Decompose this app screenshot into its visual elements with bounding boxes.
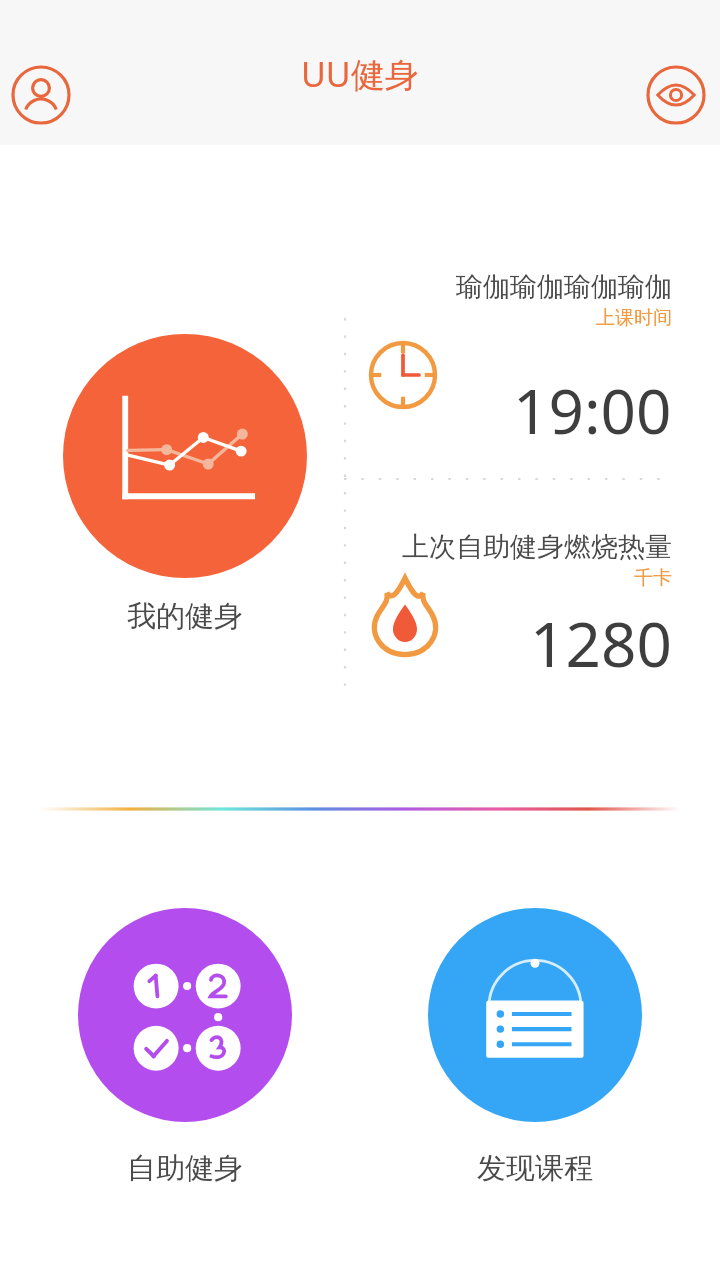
button[interactable]: 瑜伽瑜伽瑜伽瑜伽 (346, 270, 672, 470)
button[interactable]: Preview (643, 62, 709, 128)
staticText: 千卡 (634, 566, 672, 590)
staticText: 上课时间 (596, 306, 672, 330)
button[interactable]: 发现课程 (428, 908, 642, 1187)
staticText: 我的健身 (127, 598, 243, 635)
staticText: 发现课程 (477, 1150, 593, 1187)
button[interactable]: 我的健身 (63, 334, 307, 635)
staticText: 上次自助健身燃烧热量 (402, 530, 672, 564)
staticText: 瑜伽瑜伽瑜伽瑜伽 (456, 270, 672, 304)
button[interactable]: Profile (8, 62, 74, 128)
staticText: UU健身 (301, 51, 419, 97)
button[interactable]: 上次自助健身燃烧热量 (346, 530, 672, 695)
button[interactable]: 自助健身 (78, 908, 292, 1187)
staticText: 自助健身 (127, 1150, 243, 1187)
staticText: 1280 (530, 601, 672, 685)
staticText: 19:00 (513, 368, 672, 452)
